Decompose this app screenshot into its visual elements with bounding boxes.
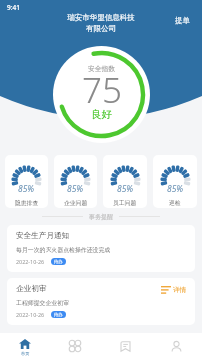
button[interactable]: 应用 — [50, 333, 100, 359]
staticText: 每月一次的灭火器点检操作还没完成 — [16, 246, 111, 253]
staticText: 待办 — [54, 312, 63, 317]
staticText: 隐患排查 — [15, 199, 39, 206]
staticText: 事务提醒 — [89, 213, 113, 221]
staticText: 企业初审 — [16, 284, 47, 294]
button[interactable]: 85% — [54, 155, 97, 208]
button[interactable]: 提单 — [175, 16, 190, 25]
staticText: 75 — [82, 66, 122, 114]
button[interactable]: 详情 — [161, 286, 186, 294]
staticText: 企业问题 — [64, 199, 88, 206]
staticText: 安全指数 — [88, 64, 116, 73]
staticText: 85% — [117, 183, 134, 195]
staticText: 详情 — [173, 286, 186, 294]
staticText: 良好 — [91, 108, 112, 121]
staticText: 9:41 — [7, 3, 20, 12]
staticText: 员工问题 — [113, 199, 137, 206]
staticText: 巡检 — [169, 199, 181, 206]
staticText: 瑞安市华盟信息科技 有限公司 — [67, 13, 135, 33]
staticText: 85% — [18, 183, 35, 195]
button[interactable]: 我的 — [151, 333, 202, 359]
staticText: 工程师提交企业初审 — [16, 299, 70, 306]
staticText: 提单 — [175, 16, 190, 25]
button[interactable]: 85% — [5, 155, 48, 208]
button[interactable]: 安全生产月通知 — [7, 225, 195, 272]
button[interactable]: 企业初审 — [7, 278, 195, 325]
button[interactable]: 85% — [103, 155, 147, 208]
staticText: 85% — [167, 183, 184, 195]
staticText: 首页 — [21, 351, 30, 356]
button[interactable]: 85% — [153, 155, 197, 208]
button[interactable]: 首页 — [0, 333, 50, 356]
staticText: 安全生产月通知 — [16, 231, 70, 241]
staticText: 2022-10-26 — [16, 311, 45, 318]
staticText: 2022-10-26 — [16, 258, 45, 265]
button[interactable]: 消息 — [100, 333, 151, 359]
staticText: 待办 — [54, 259, 63, 264]
staticText: 85% — [67, 183, 84, 195]
